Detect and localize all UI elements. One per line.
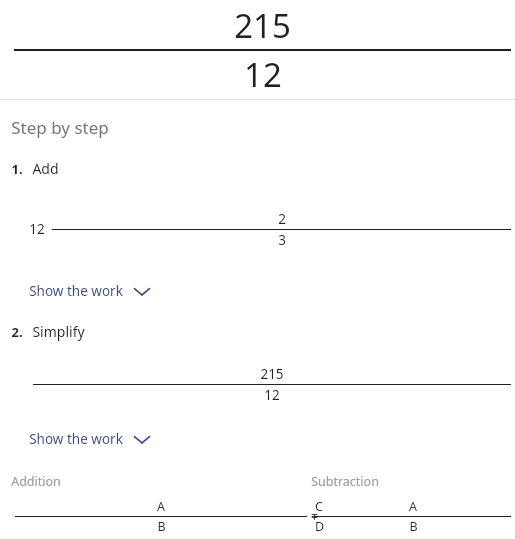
- staticText: Addition: [11, 473, 61, 490]
- staticText: 12: [264, 386, 280, 404]
- staticText: B: [157, 518, 166, 535]
- staticText: 2: [278, 210, 286, 228]
- staticText: A: [157, 498, 165, 515]
- staticText: 2.: [11, 323, 23, 341]
- staticText: B: [409, 518, 418, 535]
- staticText: 12: [29, 220, 45, 238]
- staticText: Show the work: [29, 282, 123, 300]
- staticText: 3: [278, 231, 286, 249]
- staticText: 1.: [11, 160, 23, 178]
- staticText: Show the work: [29, 430, 123, 448]
- staticText: 215: [260, 365, 284, 383]
- button[interactable]: Show the work: [28, 429, 152, 449]
- button[interactable]: Show the work: [28, 281, 152, 301]
- staticText: 215: [234, 3, 291, 48]
- staticText: 12: [244, 52, 282, 97]
- staticText: Step by step: [11, 116, 109, 139]
- staticText: Simplify: [32, 322, 85, 341]
- staticText: A: [409, 498, 417, 515]
- staticText: Subtraction: [311, 473, 379, 490]
- staticText: Add: [32, 159, 59, 178]
